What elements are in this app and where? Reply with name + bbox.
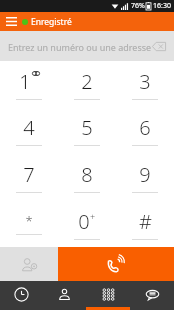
button[interactable]: Entrez un numéro ou une adresse (0, 31, 174, 61)
button[interactable]: 6 (116, 107, 174, 153)
staticText: 5 (81, 114, 93, 141)
staticText: # (139, 208, 152, 235)
staticText: Entrez un numéro ou une adresse (8, 41, 152, 53)
staticText: 6 (139, 114, 151, 141)
button[interactable]: Call (58, 247, 174, 281)
staticText: 0 (78, 208, 90, 235)
button[interactable]: 3 (116, 61, 174, 107)
staticText: 8 (81, 161, 93, 188)
button[interactable]: Keypad (86, 281, 130, 310)
staticText: 7 (23, 161, 35, 188)
button[interactable]: 2 (58, 61, 116, 107)
button[interactable]: * (0, 200, 58, 247)
button[interactable]: # (116, 200, 174, 247)
staticText: 9 (139, 161, 151, 188)
button[interactable]: 4 (0, 107, 58, 153)
button[interactable]: Messages (130, 281, 174, 310)
button[interactable]: 1 (0, 61, 58, 107)
staticText: Enregistré (31, 16, 72, 28)
button[interactable]: Contacts (43, 281, 86, 310)
staticText: 1 (19, 68, 31, 95)
button[interactable]: Backspace (152, 40, 166, 53)
staticText: 3 (139, 68, 151, 95)
button[interactable]: 7 (0, 153, 58, 200)
staticText: + (90, 210, 96, 222)
button[interactable]: 0 (58, 200, 116, 247)
staticText: * (25, 212, 33, 230)
staticText: 76% (131, 1, 145, 11)
button[interactable]: Menu (0, 12, 22, 31)
button[interactable]: 9 (116, 153, 174, 200)
button[interactable]: Recent calls (0, 281, 43, 310)
staticText: 16:30 (153, 1, 171, 11)
button[interactable]: Add contact (0, 247, 58, 281)
staticText: 4 (23, 114, 35, 141)
button[interactable]: 5 (58, 107, 116, 153)
staticText: 2 (81, 68, 93, 95)
button[interactable]: 8 (58, 153, 116, 200)
